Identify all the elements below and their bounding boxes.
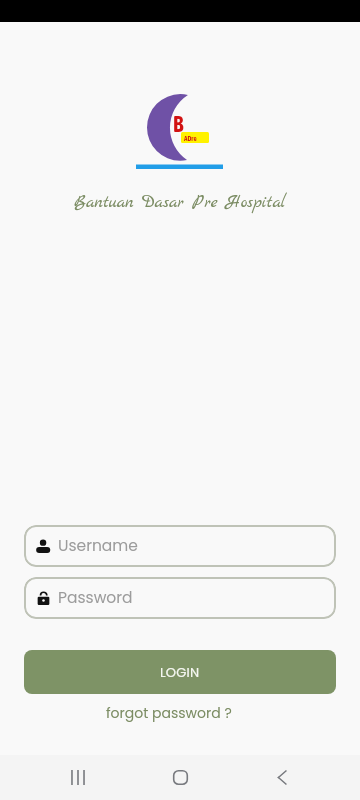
staticText: Username [58,535,138,557]
button[interactable]: Home [156,755,204,800]
button[interactable]: Back [258,755,306,800]
staticText: Password [58,587,133,609]
button[interactable]: LOGIN [24,650,336,694]
staticText: ADre [184,134,197,142]
button[interactable]: Password [24,577,336,619]
staticText: LOGIN [160,663,200,681]
button[interactable]: Username [24,525,336,567]
staticText: Bantuan Dasar Pre Hospital [0,191,360,213]
button[interactable]: forgot password ? [100,700,238,726]
button[interactable]: Recent apps [54,755,102,800]
staticText: forgot password ? [106,703,232,723]
staticText: B [173,111,184,136]
